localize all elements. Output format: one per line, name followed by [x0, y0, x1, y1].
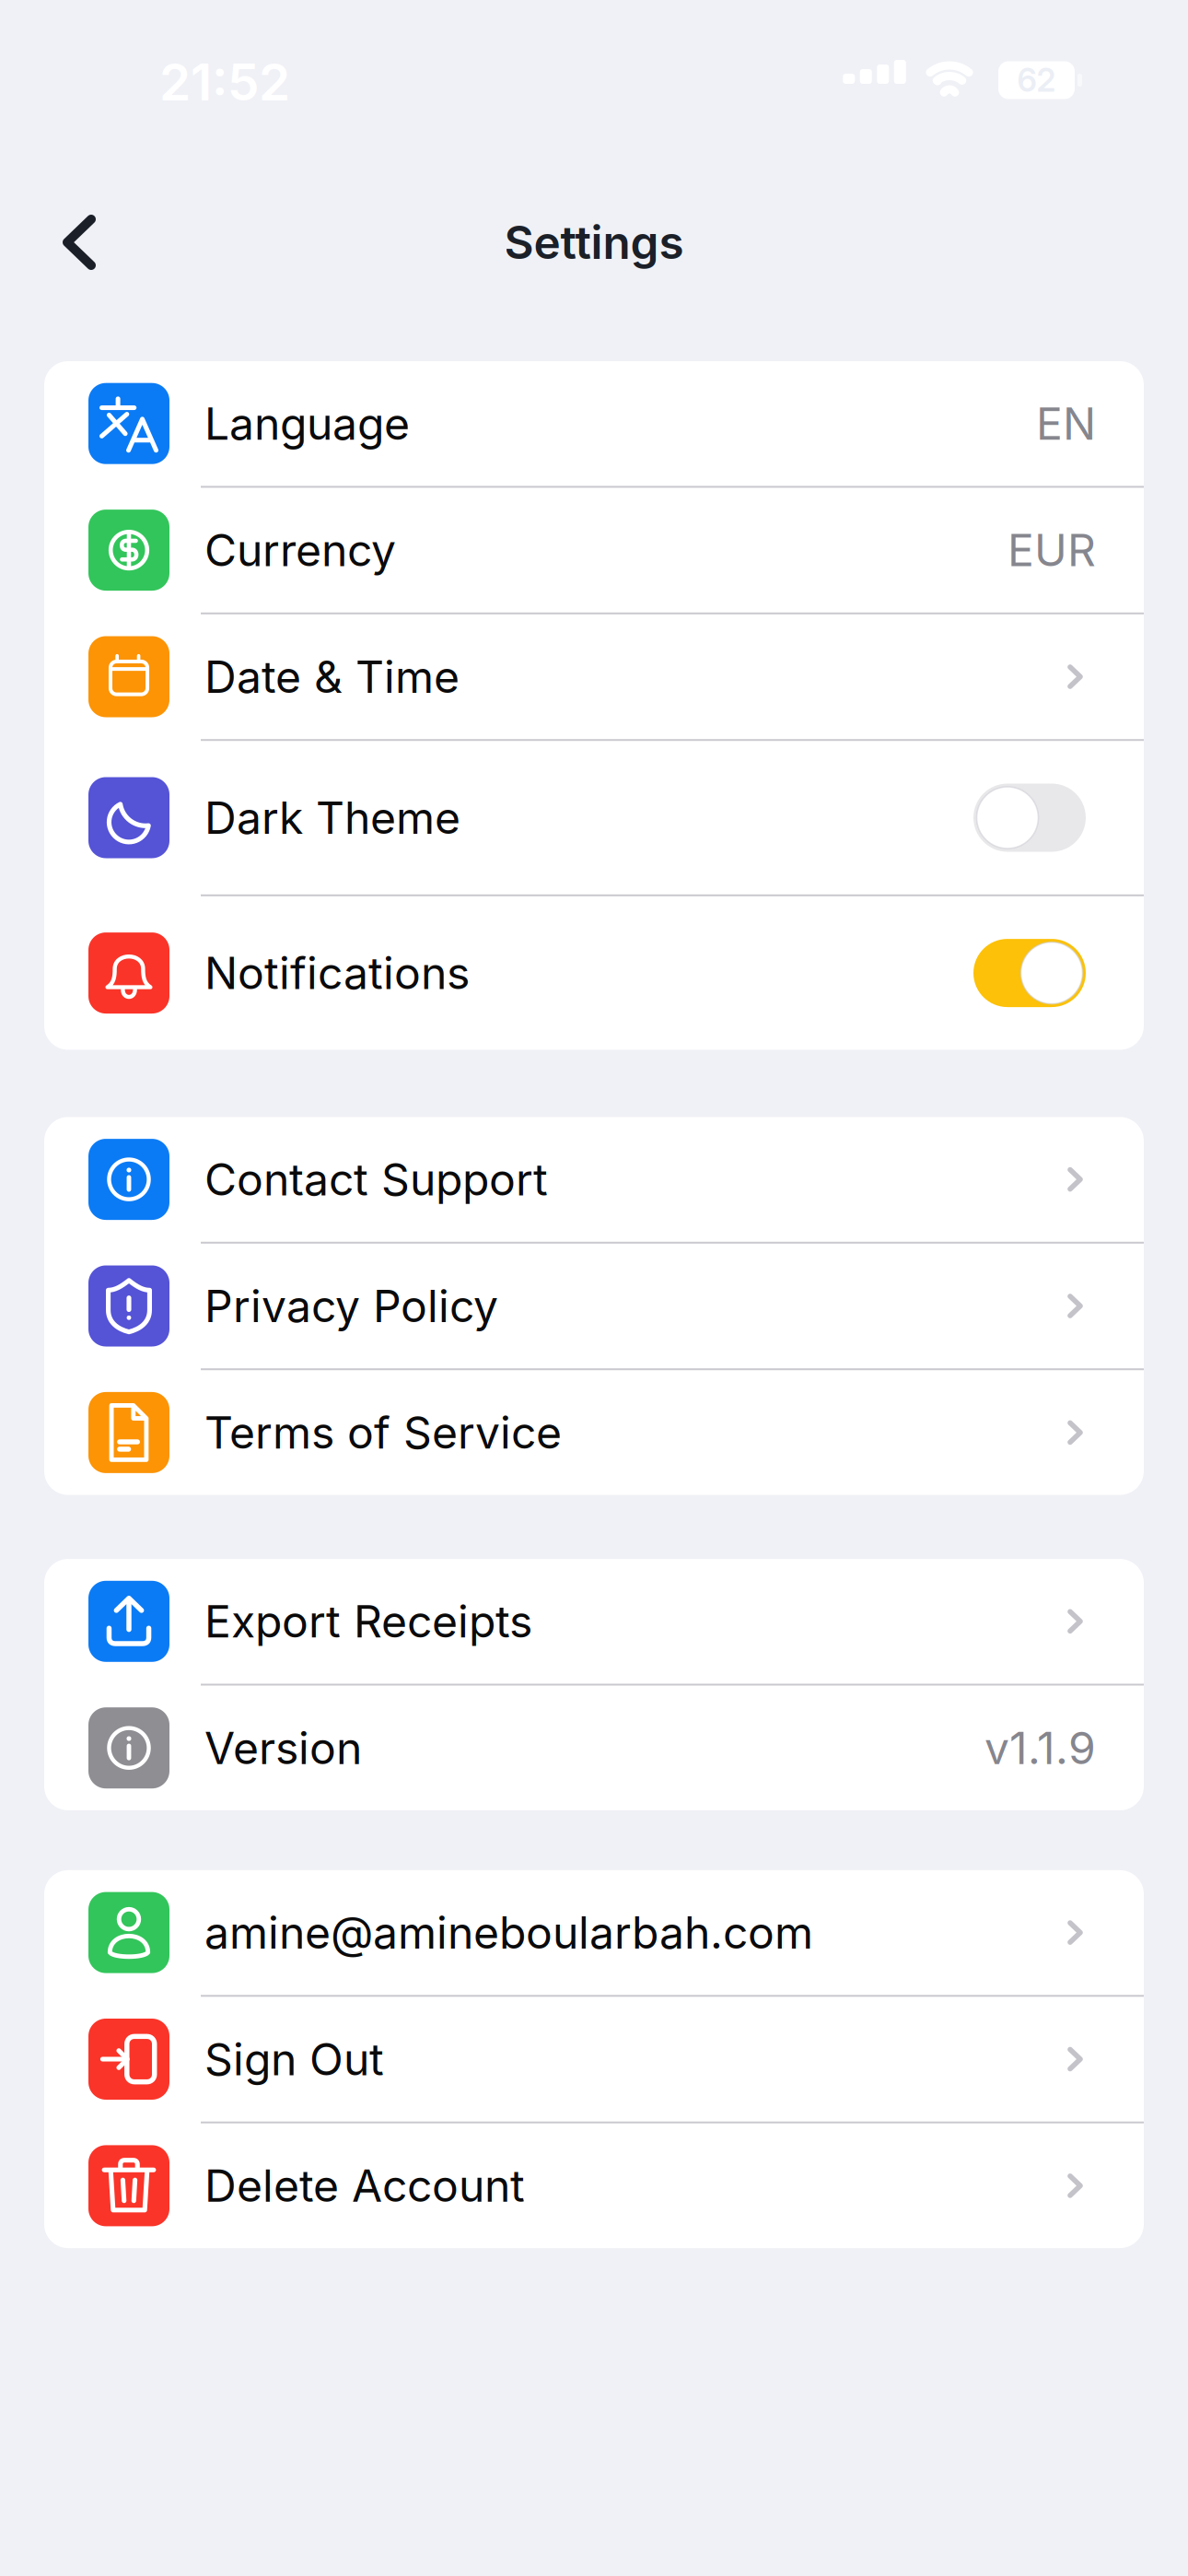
staticText: Notifications: [204, 946, 470, 1000]
staticText: Version: [204, 1721, 362, 1775]
button[interactable]: Currency: [44, 488, 1144, 612]
staticText: 62: [1017, 61, 1056, 99]
staticText: Terms of Service: [204, 1406, 562, 1459]
button[interactable]: Dark Theme: [44, 741, 1144, 894]
staticText: Currency: [204, 523, 396, 577]
button[interactable]: Version: [44, 1686, 1144, 1810]
staticText: v1.1.9: [984, 1721, 1096, 1775]
staticText: Privacy Policy: [204, 1279, 498, 1333]
button[interactable]: Export Receipts: [44, 1559, 1144, 1684]
button[interactable]: Language: [44, 361, 1144, 486]
staticText: EN: [1036, 397, 1096, 450]
button[interactable]: Back: [0, 194, 123, 290]
staticText: Contact Support: [204, 1153, 548, 1206]
staticText: EUR: [1007, 523, 1096, 577]
button[interactable]: Privacy Policy: [44, 1244, 1144, 1368]
staticText: Settings: [504, 215, 684, 270]
button[interactable]: Contact Support: [44, 1117, 1144, 1242]
button[interactable]: Date & Time: [44, 614, 1144, 739]
staticText: 21:52: [159, 52, 290, 112]
button[interactable]: Notifications: [44, 896, 1144, 1050]
staticText: Delete Account: [204, 2159, 525, 2213]
button[interactable]: Sign Out: [44, 1997, 1144, 2122]
button[interactable]: Terms of Service: [44, 1370, 1144, 1495]
staticText: Sign Out: [204, 2032, 384, 2086]
button[interactable]: amine@amineboularbah.com: [44, 1870, 1144, 1995]
staticText: Export Receipts: [204, 1595, 532, 1648]
staticText: Dark Theme: [204, 791, 460, 844]
staticText: Date & Time: [204, 650, 460, 704]
staticText: Language: [204, 397, 410, 450]
staticText: amine@amineboularbah.com: [204, 1906, 813, 1959]
button[interactable]: Delete Account: [44, 2123, 1144, 2248]
